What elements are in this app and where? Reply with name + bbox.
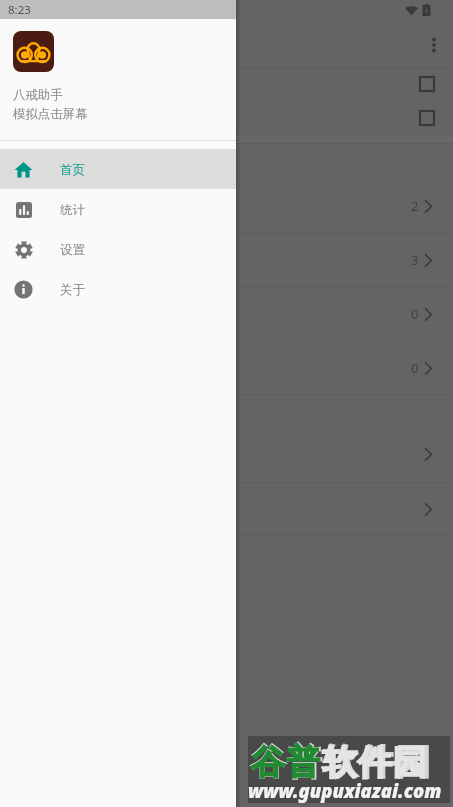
button[interactable]: 关于 (0, 269, 236, 309)
staticText: 谷普 (251, 741, 322, 784)
button[interactable]: 设置 (0, 229, 236, 269)
button[interactable]: 3 (0, 233, 453, 286)
staticText: 模拟点击屏幕 (13, 106, 88, 122)
staticText: 软件园 (322, 741, 428, 784)
staticText: 统计 (60, 202, 85, 218)
staticText: 0 (411, 305, 419, 323)
staticText: 8:23 (8, 2, 31, 18)
button[interactable] (0, 395, 453, 482)
staticText: 2 (411, 197, 419, 215)
button[interactable]: Checkbox (415, 72, 439, 96)
button[interactable]: 0 (0, 341, 453, 394)
staticText: 关于 (60, 282, 85, 298)
button[interactable]: Checkbox (415, 106, 439, 130)
staticText: 谷普软件园 (250, 740, 431, 784)
staticText: 八戒助手 (13, 87, 63, 103)
staticText: www.gupuxiazai.com (248, 778, 450, 803)
staticText: 设置 (60, 242, 85, 258)
button[interactable]: 0 (0, 287, 453, 340)
staticText: 首页 (60, 162, 85, 178)
staticText: 0 (411, 359, 419, 377)
button[interactable] (0, 483, 453, 535)
staticText: 3 (411, 251, 419, 269)
button[interactable]: More options (418, 29, 450, 61)
button[interactable]: 统计 (0, 189, 236, 229)
button[interactable]: 首页 (0, 149, 236, 189)
